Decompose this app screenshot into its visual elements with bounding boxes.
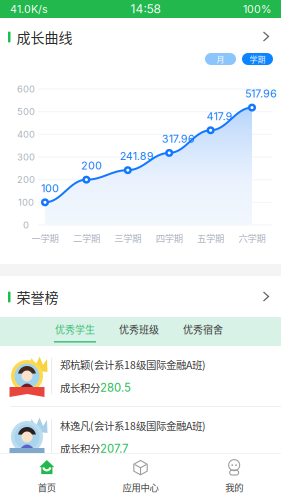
staticText: 林逸凡(会计系18级国际金融A班) bbox=[60, 418, 206, 433]
staticText: 600 bbox=[17, 83, 35, 95]
staticText: 207.7 bbox=[100, 442, 128, 455]
staticText: 一学期 bbox=[31, 231, 58, 245]
staticText: 优秀学生 bbox=[55, 322, 95, 336]
staticText: 517.96 bbox=[245, 87, 277, 100]
staticText: 荣誉榜 bbox=[16, 287, 58, 307]
staticText: 200 bbox=[17, 174, 35, 185]
staticText: 241.89 bbox=[120, 150, 154, 163]
button[interactable]: 林逸凡(会计系18级国际金融A班) bbox=[0, 407, 281, 467]
staticText: 14:58 bbox=[130, 2, 160, 16]
staticText: 成长曲线 bbox=[16, 27, 72, 47]
button[interactable]: 学期 bbox=[242, 53, 273, 65]
button[interactable]: 优秀班级 bbox=[119, 317, 159, 346]
staticText: 二学期 bbox=[73, 231, 100, 245]
staticText: 首页 bbox=[38, 480, 56, 494]
staticText: 100 bbox=[41, 182, 59, 195]
button[interactable]: 我的 bbox=[187, 454, 281, 500]
staticText: 学期 bbox=[249, 53, 265, 65]
staticText: 我的 bbox=[225, 480, 243, 494]
staticText: 300 bbox=[17, 151, 35, 163]
staticText: 100 bbox=[18, 197, 34, 208]
button[interactable]: 荣誉榜 bbox=[0, 284, 281, 310]
button[interactable]: 成长曲线 bbox=[0, 24, 281, 50]
button[interactable]: 首页 bbox=[0, 454, 94, 500]
staticText: 成长积分 bbox=[60, 380, 100, 395]
staticText: 应用中心 bbox=[122, 480, 158, 494]
staticText: 317.96 bbox=[162, 132, 195, 145]
staticText: 五学期 bbox=[197, 231, 224, 245]
button[interactable]: 应用中心 bbox=[94, 454, 187, 500]
button[interactable]: 优秀宿舍 bbox=[183, 317, 223, 346]
staticText: 41.0K/s bbox=[10, 2, 48, 15]
staticText: 四学期 bbox=[156, 231, 183, 245]
staticText: 200 bbox=[81, 159, 102, 172]
staticText: 500 bbox=[17, 106, 35, 117]
staticText: 优秀宿舍 bbox=[183, 322, 223, 336]
staticText: 优秀班级 bbox=[119, 322, 159, 336]
button[interactable]: 郑杭颖(会计系18级国际金融A班) bbox=[0, 346, 281, 406]
staticText: 六学期 bbox=[238, 231, 265, 245]
button[interactable]: 优秀学生 bbox=[55, 317, 95, 346]
staticText: 0 bbox=[23, 219, 29, 231]
staticText: 280.5 bbox=[100, 381, 131, 394]
button[interactable]: 月 bbox=[205, 53, 236, 65]
staticText: 成长积分 bbox=[60, 441, 100, 456]
staticText: 417.9 bbox=[207, 110, 233, 123]
staticText: 100% bbox=[243, 2, 271, 15]
staticText: 月 bbox=[216, 53, 224, 65]
staticText: 400 bbox=[17, 129, 35, 140]
staticText: 郑杭颖(会计系18级国际金融A班) bbox=[60, 357, 206, 372]
staticText: 三学期 bbox=[114, 231, 141, 245]
